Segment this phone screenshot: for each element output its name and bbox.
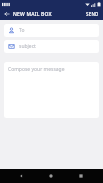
button[interactable]: Back <box>13 169 29 183</box>
staticText: SEND <box>86 11 99 17</box>
staticText: subject <box>19 43 36 50</box>
button[interactable]: To <box>4 24 99 37</box>
button[interactable]: Compose your message <box>4 62 99 118</box>
staticText: NEW MAIL BOX <box>13 11 52 18</box>
button[interactable]: SEND <box>82 8 103 20</box>
staticText: To <box>19 27 25 34</box>
button[interactable]: Back <box>0 8 13 20</box>
button[interactable]: Recent apps <box>73 169 89 183</box>
staticText: Compose your message <box>8 66 65 73</box>
button[interactable]: subject <box>4 40 99 53</box>
button[interactable]: Home <box>43 169 59 183</box>
